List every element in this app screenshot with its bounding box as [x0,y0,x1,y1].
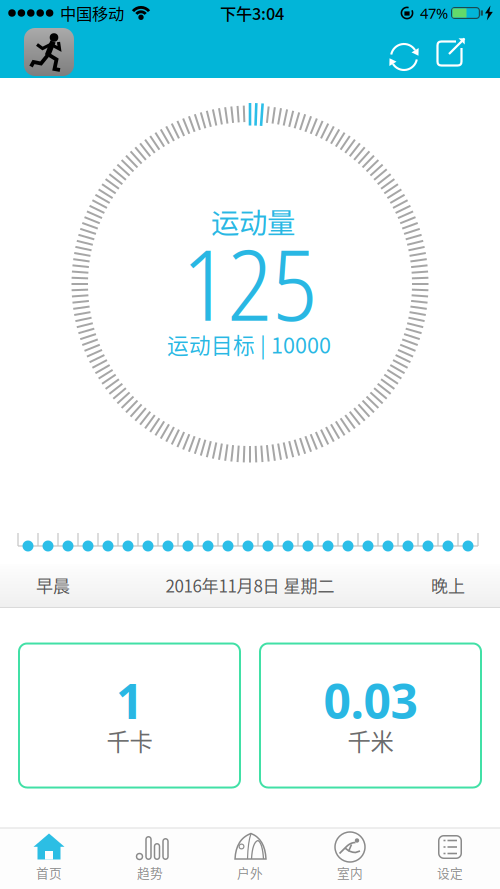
staticText: 首页 [36,863,62,882]
button[interactable]: 0.03 [259,642,482,788]
staticText: 趋势 [137,863,163,882]
staticText: 早晨 [36,573,70,597]
staticText: 2016年11月8日 星期二 [165,573,334,597]
button[interactable]: 趋势 [102,828,198,889]
staticText: 千米 [347,724,393,757]
button[interactable]: 刷新 [384,37,424,77]
staticText: 运动目标 | 10000 [167,328,331,360]
staticText: 设定 [437,863,463,882]
button[interactable]: 1 [18,642,241,788]
staticText: 47% [420,3,448,23]
button[interactable]: 室内 [302,828,398,889]
button[interactable]: 户外 [202,828,298,889]
staticText: 125 [182,217,317,349]
staticText: 中国移动 [60,1,124,25]
staticText: 运动量 [211,200,295,241]
staticText: 千卡 [106,724,152,757]
staticText: 0.03 [323,669,417,732]
staticText: 室内 [337,863,363,882]
button[interactable]: 设定 [402,828,498,889]
button[interactable]: 分享 [432,36,472,76]
button[interactable]: 个人中心 [24,28,74,76]
staticText: 1 [116,669,143,732]
staticText: 下午3:04 [220,1,284,25]
button[interactable]: 首页 [1,828,97,889]
staticText: 晚上 [431,573,465,597]
staticText: 户外 [237,863,263,882]
